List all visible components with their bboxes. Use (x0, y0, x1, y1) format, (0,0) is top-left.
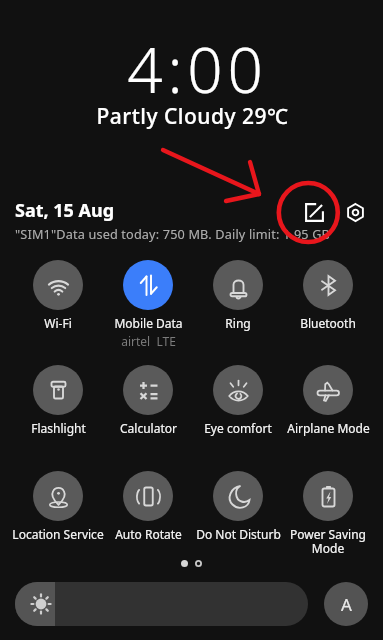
staticText: Bluetooth (300, 315, 356, 331)
button[interactable]: Edit (296, 194, 332, 230)
button[interactable]: Brightness (15, 582, 308, 626)
button[interactable]: Eye comfort (178, 365, 298, 436)
button[interactable]: Power Saving Mode (268, 471, 383, 557)
button[interactable]: Settings (337, 194, 373, 230)
staticText: Do Not Disturb (196, 526, 281, 542)
button[interactable]: Auto brightness (324, 582, 368, 626)
staticText: Partly Cloudy 29℃ (1, 102, 383, 131)
staticText: Power Saving Mode (290, 526, 366, 557)
button[interactable]: Location Service (0, 471, 118, 542)
staticText: Sat, 15 Aug (15, 198, 115, 223)
button[interactable]: Bluetooth (268, 260, 383, 331)
staticText: Airplane Mode (287, 420, 370, 436)
staticText: A (341, 593, 352, 616)
staticText: Ring (225, 315, 251, 331)
staticText: 4:00 (6, 27, 383, 111)
button[interactable]: Page 1 (181, 560, 188, 567)
staticText: Flashlight (31, 420, 86, 436)
staticText: Mobile Data (114, 315, 183, 331)
staticText: Location Service (12, 526, 104, 542)
button[interactable]: Do Not Disturb (178, 471, 298, 542)
staticText: "SIM1"Data used today: 750 MB. Daily lim… (15, 225, 330, 242)
staticText: Calculator (120, 420, 177, 436)
button[interactable]: Airplane Mode (268, 365, 383, 436)
button[interactable]: Mobile Data (88, 260, 208, 349)
staticText: airtel LTE (121, 333, 176, 349)
staticText: Eye comfort (204, 420, 272, 436)
button[interactable]: Page 2 (195, 560, 202, 567)
button[interactable]: Flashlight (0, 365, 118, 436)
staticText: Auto Rotate (115, 526, 182, 542)
button[interactable]: Ring (178, 260, 298, 331)
staticText: Wi-Fi (44, 315, 72, 331)
button[interactable]: Calculator (88, 365, 208, 436)
button[interactable]: Auto Rotate (88, 471, 208, 542)
button[interactable]: Wi-Fi (0, 260, 118, 331)
